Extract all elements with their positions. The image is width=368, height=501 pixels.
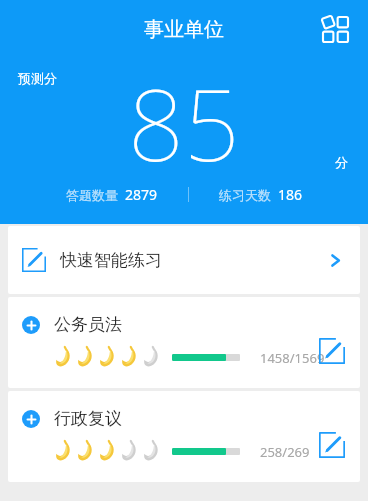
staticText: 85 bbox=[128, 56, 240, 189]
staticText: 1458/1569 bbox=[260, 349, 325, 367]
staticText: 2879 bbox=[125, 185, 158, 204]
button[interactable]: 行政复议 bbox=[8, 391, 360, 482]
staticText: 186 bbox=[278, 185, 303, 204]
staticText: 预测分 bbox=[18, 70, 57, 86]
staticText: 258/269 bbox=[260, 443, 310, 461]
staticText: 事业单位 bbox=[144, 17, 224, 42]
button[interactable]: Edit 公务员法 bbox=[314, 333, 350, 369]
button[interactable]: 公务员法 bbox=[8, 297, 360, 388]
staticText: 答题数量 bbox=[66, 187, 118, 203]
button[interactable]: 快速智能练习 bbox=[8, 226, 360, 294]
staticText: 分 bbox=[335, 154, 348, 170]
button[interactable]: Modules bbox=[314, 8, 356, 50]
button[interactable]: Edit 行政复议 bbox=[314, 427, 350, 463]
staticText: 行政复议 bbox=[54, 408, 122, 429]
staticText: 练习天数 bbox=[219, 187, 271, 203]
staticText: 公务员法 bbox=[54, 314, 122, 335]
staticText: 快速智能练习 bbox=[60, 250, 162, 271]
